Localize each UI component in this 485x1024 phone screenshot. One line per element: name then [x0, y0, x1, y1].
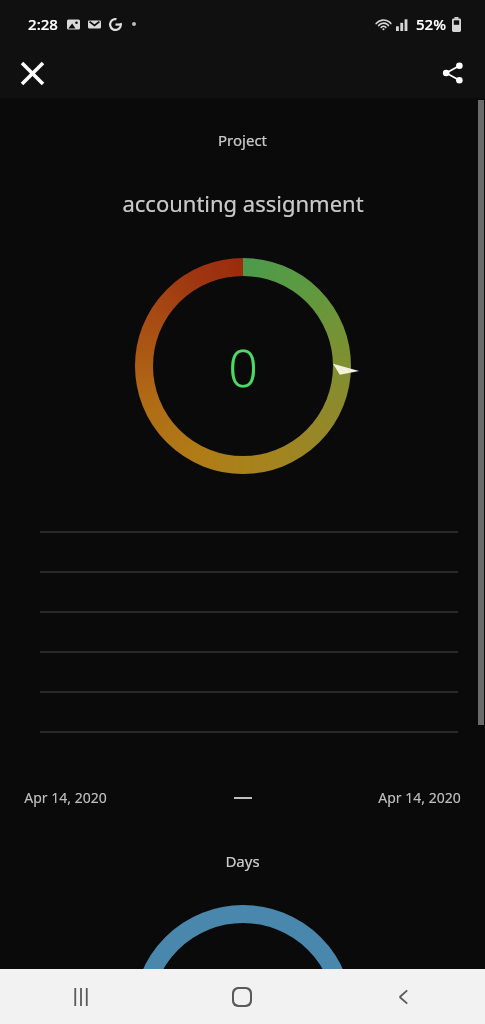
button[interactable]: Close	[10, 51, 54, 95]
staticText: Project	[218, 130, 267, 150]
staticText: accounting assignment	[122, 188, 364, 218]
staticText: 2:28	[28, 14, 58, 34]
button[interactable]: Back	[323, 969, 485, 1024]
staticText: 52%	[416, 14, 446, 34]
staticText: Apr 14, 2020	[24, 788, 107, 807]
staticText: Apr 14, 2020	[378, 788, 461, 807]
staticText: Days	[225, 851, 260, 871]
staticText: 0	[228, 331, 258, 402]
button[interactable]: Recent apps	[0, 969, 161, 1024]
button[interactable]: Home	[161, 969, 323, 1024]
button[interactable]: Share	[431, 51, 475, 95]
